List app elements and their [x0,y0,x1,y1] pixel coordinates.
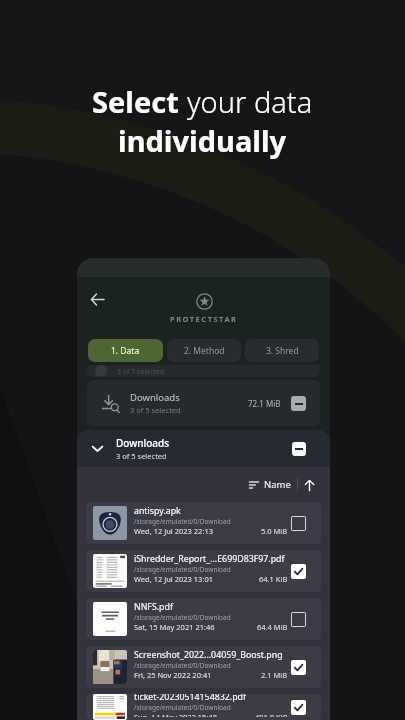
staticText: ticket-20230514154832.pdf [134,694,246,703]
button[interactable]: Back [84,286,110,312]
staticText: Wed, 12 Jul 2023 13:01 [134,574,214,584]
staticText: /storage/emulated/0/Download [134,661,231,670]
button[interactable]: Select file [291,516,306,531]
staticText: 3 of 5 selected [117,367,165,377]
button[interactable]: Select file [291,660,306,675]
staticText: Downloads [116,436,170,450]
button[interactable]: Sort ascending [302,478,316,492]
button[interactable]: 1. Data [88,339,163,362]
button[interactable]: ticket-20230514154832.pdf [86,694,321,720]
button[interactable]: Select file [291,700,306,715]
staticText: 64.4 MiB [257,622,288,632]
staticText: 5.0 MiB [261,526,288,536]
staticText: /storage/emulated/0/Download [134,613,231,622]
staticText: /storage/emulated/0/Download [134,517,231,526]
staticText: Wed, 12 Jul 2023 22:13 [134,526,214,536]
staticText: 2. Method [184,345,225,357]
staticText: 2.1 MiB [261,670,288,680]
staticText: Downloads [130,391,180,404]
staticText: iShredder_Report_...E699D83F97.pdf [134,553,285,565]
button[interactable]: Downloads [92,430,306,467]
button[interactable]: Name [247,474,293,495]
staticText: your data [187,82,313,121]
button[interactable]: Select file [291,612,306,627]
staticText: Name [264,478,291,491]
button[interactable]: Downloads [87,380,320,426]
staticText: 491.8 KiB [255,712,288,717]
button[interactable]: Select file [291,564,306,579]
staticText: Sun, 14 May 2023 15:48 [134,712,217,717]
staticText: 3 of 5 selected [116,451,167,461]
staticText: NNFS.pdf [134,601,173,613]
button[interactable]: iShredder_Report_...E699D83F97.pdf [86,550,321,592]
staticText: individually [118,121,287,160]
button[interactable]: NNFS.pdf [86,598,321,640]
staticText: /storage/emulated/0/Download [134,565,231,574]
staticText: Screenshot_2022...04059_Boost.png [134,649,283,661]
button[interactable]: antispy.apk [86,502,321,544]
button[interactable]: Deselect all [291,396,306,411]
staticText: PROTECTSTAR [170,314,238,324]
button[interactable]: Screenshot_2022...04059_Boost.png [86,646,321,688]
staticText: Select [92,82,187,121]
staticText: Sat, 15 May 2021 21:46 [134,622,215,632]
staticText: 3. Shred [266,345,299,357]
button[interactable]: 3. Shred [245,339,319,362]
staticText: antispy.apk [134,505,181,517]
button[interactable]: 2. Method [167,339,241,362]
staticText: /storage/emulated/0/Download [134,703,231,712]
staticText: 1. Data [111,345,140,357]
staticText: Fri, 25 Nov 2022 20:41 [134,670,212,680]
button[interactable]: Deselect all [292,442,306,456]
staticText: 72.1 MiB [248,398,281,409]
staticText: 3 of 5 selected [130,405,181,415]
staticText: 64.1 KiB [259,574,288,584]
